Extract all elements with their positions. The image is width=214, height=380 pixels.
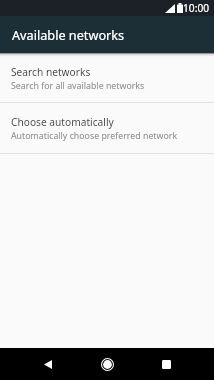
button[interactable]: Choose automatically <box>0 103 214 153</box>
button[interactable]: Recents <box>149 348 184 380</box>
staticText: Choose automatically <box>11 115 114 129</box>
button[interactable]: Home <box>90 348 125 380</box>
staticText: Available networks <box>12 26 125 43</box>
staticText: Automatically choose preferred network <box>11 130 178 142</box>
button[interactable]: Search networks <box>0 53 214 102</box>
button[interactable]: Back <box>30 348 65 380</box>
other: Battery <box>177 3 183 13</box>
staticText: Search for all available networks <box>11 80 145 92</box>
staticText: Search networks <box>11 65 91 79</box>
other: Signal strength <box>165 4 175 13</box>
staticText: 10:00 <box>183 1 210 15</box>
